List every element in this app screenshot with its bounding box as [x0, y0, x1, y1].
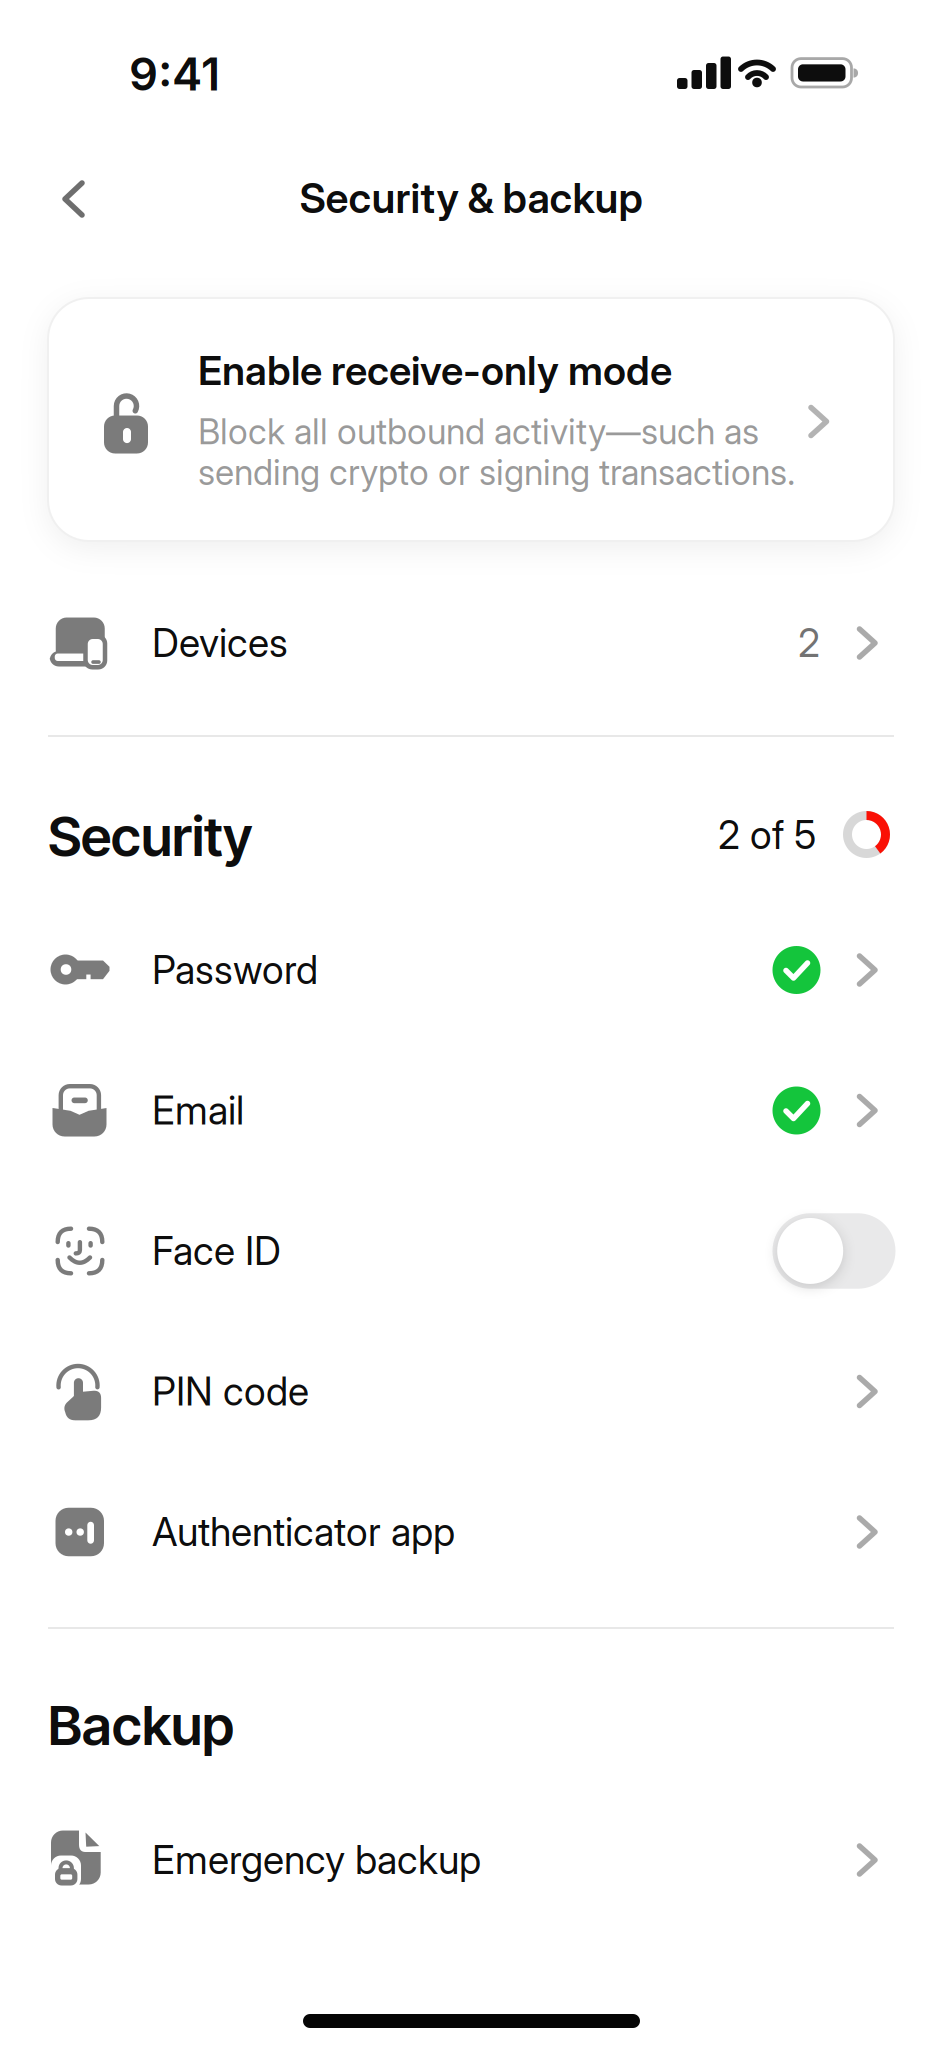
button[interactable]: Emergency backup [0, 1790, 942, 1930]
button[interactable]: Face ID [772, 1213, 895, 1289]
staticText: Block all outbound activity—such as send… [198, 411, 795, 493]
button[interactable]: Email [0, 1040, 942, 1180]
staticText: Backup [48, 1692, 234, 1758]
staticText: Enable receive-only mode [198, 347, 672, 394]
staticText: Password [152, 947, 318, 993]
button[interactable]: Back [44, 162, 104, 235]
staticText: Devices [152, 620, 288, 666]
button[interactable]: Devices [0, 573, 942, 713]
staticText: 9:41 [129, 47, 220, 101]
staticText: PIN code [152, 1369, 309, 1414]
button[interactable]: Enable receive-only mode [48, 298, 894, 541]
staticText: Security & backup [299, 174, 642, 222]
button[interactable]: Password [0, 900, 942, 1040]
staticText: Face ID [152, 1228, 281, 1274]
staticText: 2 [798, 620, 820, 666]
staticText: Security [48, 803, 252, 869]
staticText: 2 of 5 [718, 812, 816, 858]
staticText: Emergency backup [152, 1837, 481, 1883]
button[interactable]: Authenticator app [0, 1462, 942, 1602]
button[interactable]: PIN code [0, 1321, 942, 1461]
staticText: Email [152, 1088, 244, 1133]
staticText: Authenticator app [152, 1509, 455, 1555]
